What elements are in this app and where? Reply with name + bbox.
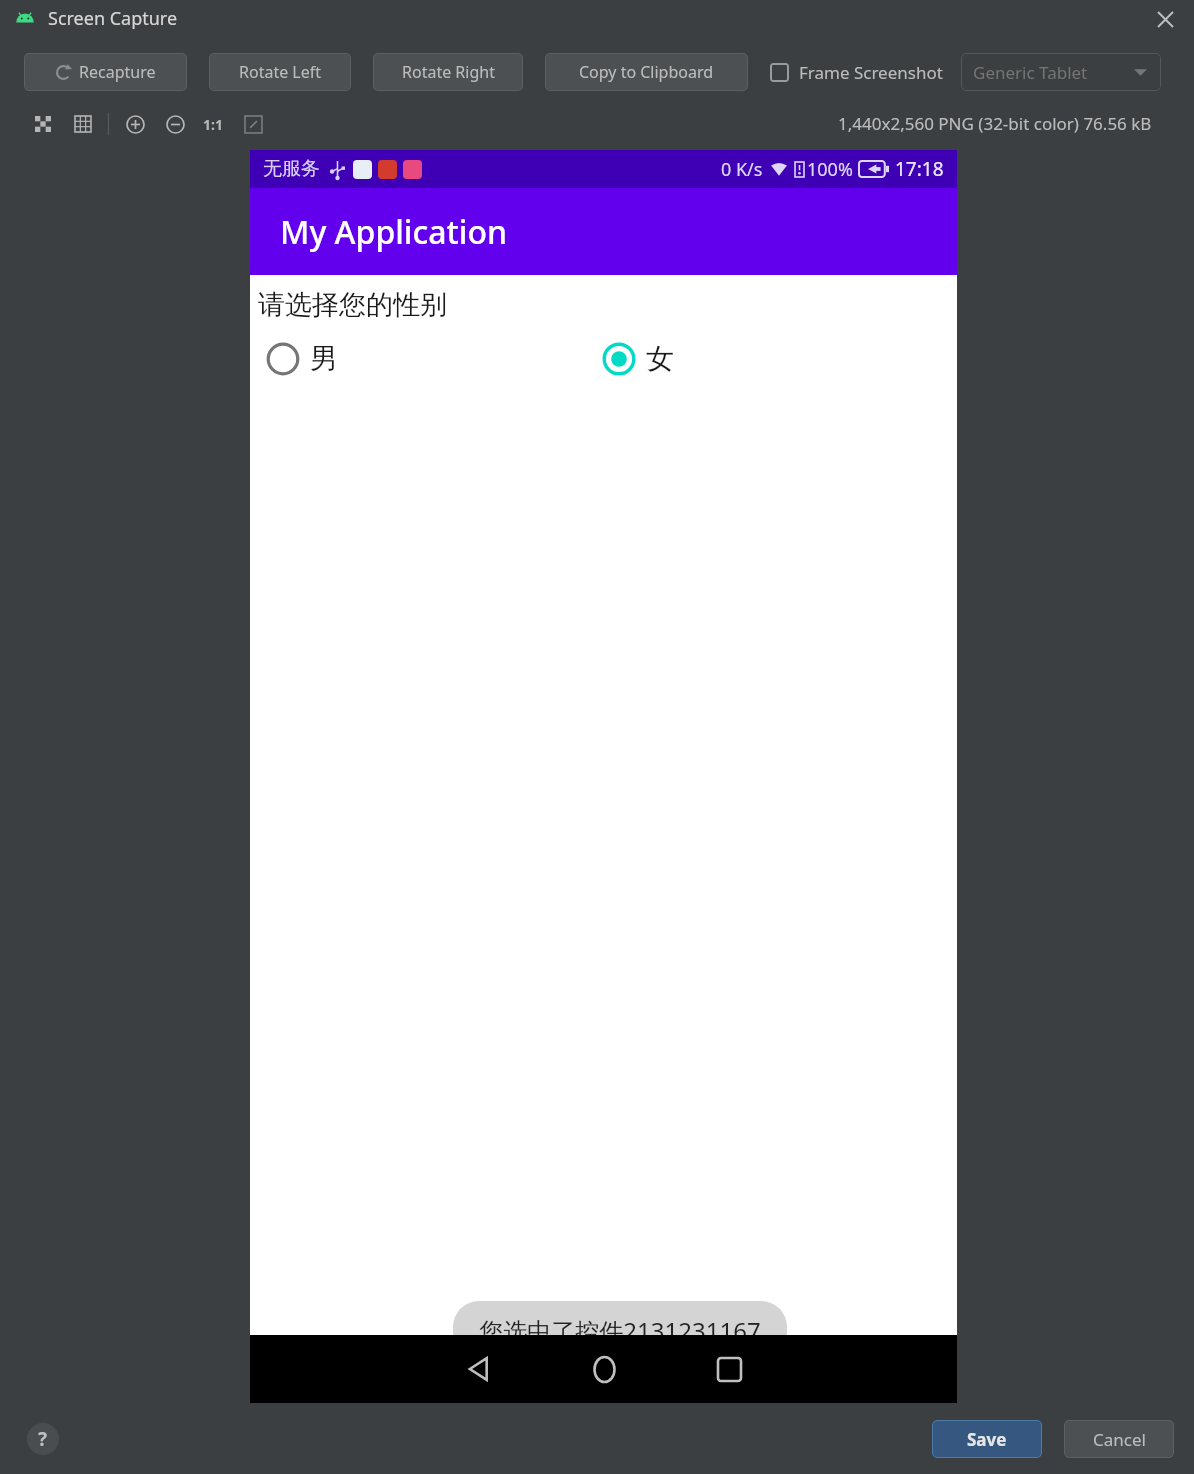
button[interactable]: Cancel (1064, 1420, 1174, 1458)
button[interactable]: Grid (70, 111, 96, 137)
button[interactable]: Generic Tablet (961, 53, 1161, 91)
staticText: My Application (280, 210, 508, 254)
button[interactable]: Zoom out (161, 110, 189, 138)
staticText: ? (38, 1426, 48, 1452)
staticText: 女 (646, 341, 674, 376)
staticText: Frame Screenshot (799, 61, 943, 84)
button[interactable]: Zoom in (121, 110, 149, 138)
staticText: 0 K/s (721, 157, 763, 182)
button[interactable]: Help (27, 1423, 59, 1455)
button[interactable]: Recapture (24, 53, 187, 91)
button[interactable]: Fit to window (239, 110, 267, 138)
staticText: 17:18 (895, 156, 944, 182)
staticText: Rotate Left (239, 61, 322, 83)
staticText: 1:1 (203, 115, 223, 134)
button[interactable]: 女 (602, 341, 957, 376)
button[interactable]: Transparency (30, 111, 56, 137)
button[interactable]: Actual size (199, 110, 227, 138)
staticText: 1,440x2,560 PNG (32-bit color) 76.56 kB (838, 112, 1152, 135)
button[interactable]: Rotate Right (373, 53, 523, 91)
button[interactable]: Copy to Clipboard (545, 53, 748, 91)
staticText: 100% (807, 157, 853, 182)
staticText: 请选择您的性别 (258, 288, 447, 322)
button[interactable]: Frame Screenshot (770, 61, 943, 84)
staticText: Cancel (1093, 1428, 1146, 1451)
staticText: Generic Tablet (973, 61, 1088, 84)
staticText: Rotate Right (402, 61, 495, 83)
staticText: Screen Capture (48, 6, 178, 31)
button[interactable]: Rotate Left (209, 53, 351, 91)
staticText: Copy to Clipboard (579, 61, 714, 83)
button[interactable]: Recents (694, 1335, 764, 1403)
button[interactable]: 男 (266, 341, 594, 376)
staticText: 男 (310, 341, 338, 376)
staticText: Save (967, 1428, 1007, 1451)
staticText: Recapture (79, 61, 156, 83)
button[interactable]: Back (444, 1335, 514, 1403)
button[interactable]: Close (1150, 4, 1180, 34)
staticText: 您选中了控件2131231167 (479, 1314, 761, 1347)
button[interactable]: Home (569, 1335, 639, 1403)
button[interactable]: Save (932, 1420, 1042, 1458)
staticText: 无服务 (263, 157, 320, 181)
